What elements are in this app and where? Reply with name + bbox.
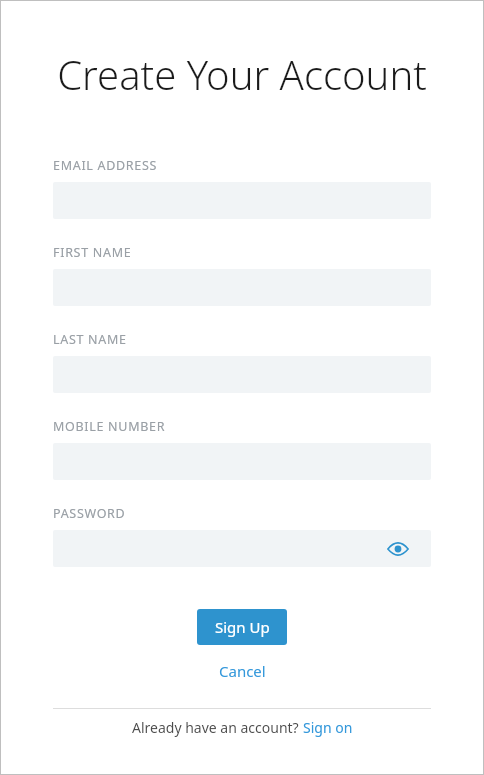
staticText: Already have an account? — [132, 718, 303, 737]
staticText: Sign Up — [215, 617, 270, 637]
staticText: FIRST NAME — [53, 244, 132, 261]
button[interactable]: Show password — [385, 536, 411, 562]
button[interactable]: Cancel — [209, 657, 276, 685]
staticText: LAST NAME — [53, 331, 127, 348]
button[interactable]: Show password — [53, 530, 431, 567]
staticText: PASSWORD — [53, 505, 126, 522]
staticText: Sign on — [303, 718, 353, 737]
staticText: Create Your Account — [57, 47, 427, 101]
staticText: MOBILE NUMBER — [53, 418, 166, 435]
staticText: EMAIL ADDRESS — [53, 157, 158, 174]
button[interactable]: Sign on — [303, 718, 353, 737]
staticText: Cancel — [219, 661, 266, 681]
button[interactable]: Sign Up — [197, 609, 287, 645]
